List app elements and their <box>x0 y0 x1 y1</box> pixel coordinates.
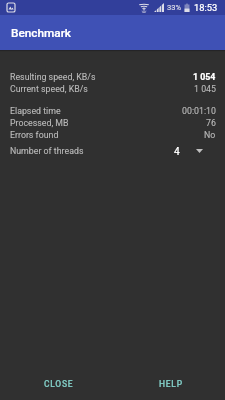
button[interactable]: HELP <box>148 371 194 397</box>
staticText: Number of threads <box>10 146 84 156</box>
staticText: 4 <box>174 146 180 158</box>
staticText: 33% <box>167 3 182 12</box>
staticText: Elapsed time <box>10 106 61 116</box>
staticText: 1 054 <box>193 72 216 82</box>
staticText: CLOSE <box>44 379 74 389</box>
staticText: Processed, MB <box>10 118 69 128</box>
button[interactable]: Number of threads <box>0 144 225 158</box>
staticText: No <box>204 130 216 140</box>
staticText: Current speed, KB/s <box>10 84 88 94</box>
staticText: 18:53 <box>194 2 218 13</box>
staticText: Errors found <box>10 130 59 140</box>
staticText: Benchmark <box>11 26 72 40</box>
staticText: 76 <box>206 118 216 128</box>
staticText: 00:01:10 <box>182 106 216 116</box>
staticText: Resulting speed, KB/s <box>10 72 96 82</box>
staticText: 1 045 <box>194 84 216 94</box>
staticText: HELP <box>159 379 183 389</box>
button[interactable]: CLOSE <box>33 371 85 397</box>
